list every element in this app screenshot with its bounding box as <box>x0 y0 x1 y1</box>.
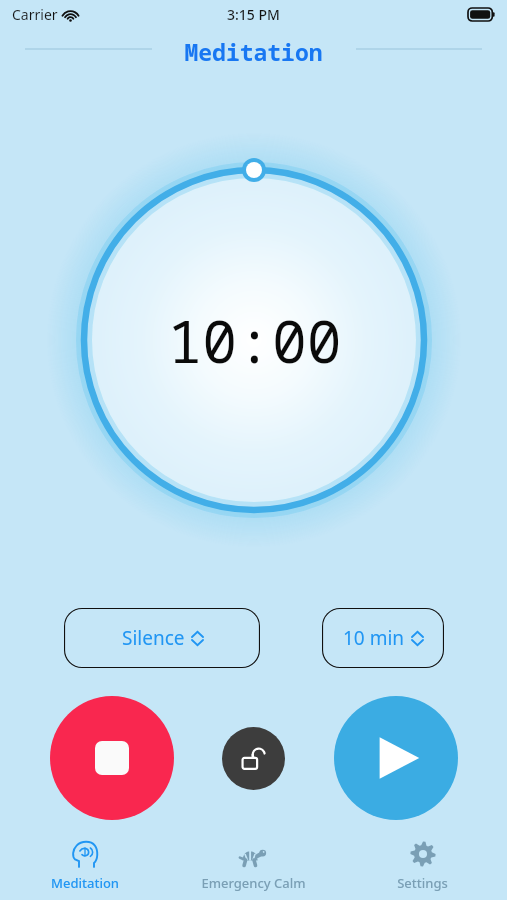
button[interactable]: Settings <box>338 833 507 898</box>
staticText: Emergency Calm <box>201 874 306 892</box>
button[interactable]: Stop <box>50 696 174 820</box>
button[interactable]: Silence <box>64 608 260 668</box>
button[interactable]: 10 min <box>322 608 444 668</box>
button[interactable]: Emergency Calm <box>169 833 338 898</box>
staticText: Meditation <box>184 36 323 67</box>
staticText: 3:15 PM <box>227 5 280 24</box>
button[interactable]: Meditation <box>0 833 169 898</box>
button[interactable]: Lock <box>222 727 285 790</box>
staticText: Carrier <box>12 5 58 24</box>
staticText: Settings <box>397 874 448 892</box>
staticText: 10:00 <box>167 301 342 380</box>
button[interactable]: Play <box>334 696 458 820</box>
staticText: Meditation <box>51 874 119 892</box>
staticText: Silence <box>122 625 185 651</box>
staticText: 10 min <box>343 625 405 651</box>
